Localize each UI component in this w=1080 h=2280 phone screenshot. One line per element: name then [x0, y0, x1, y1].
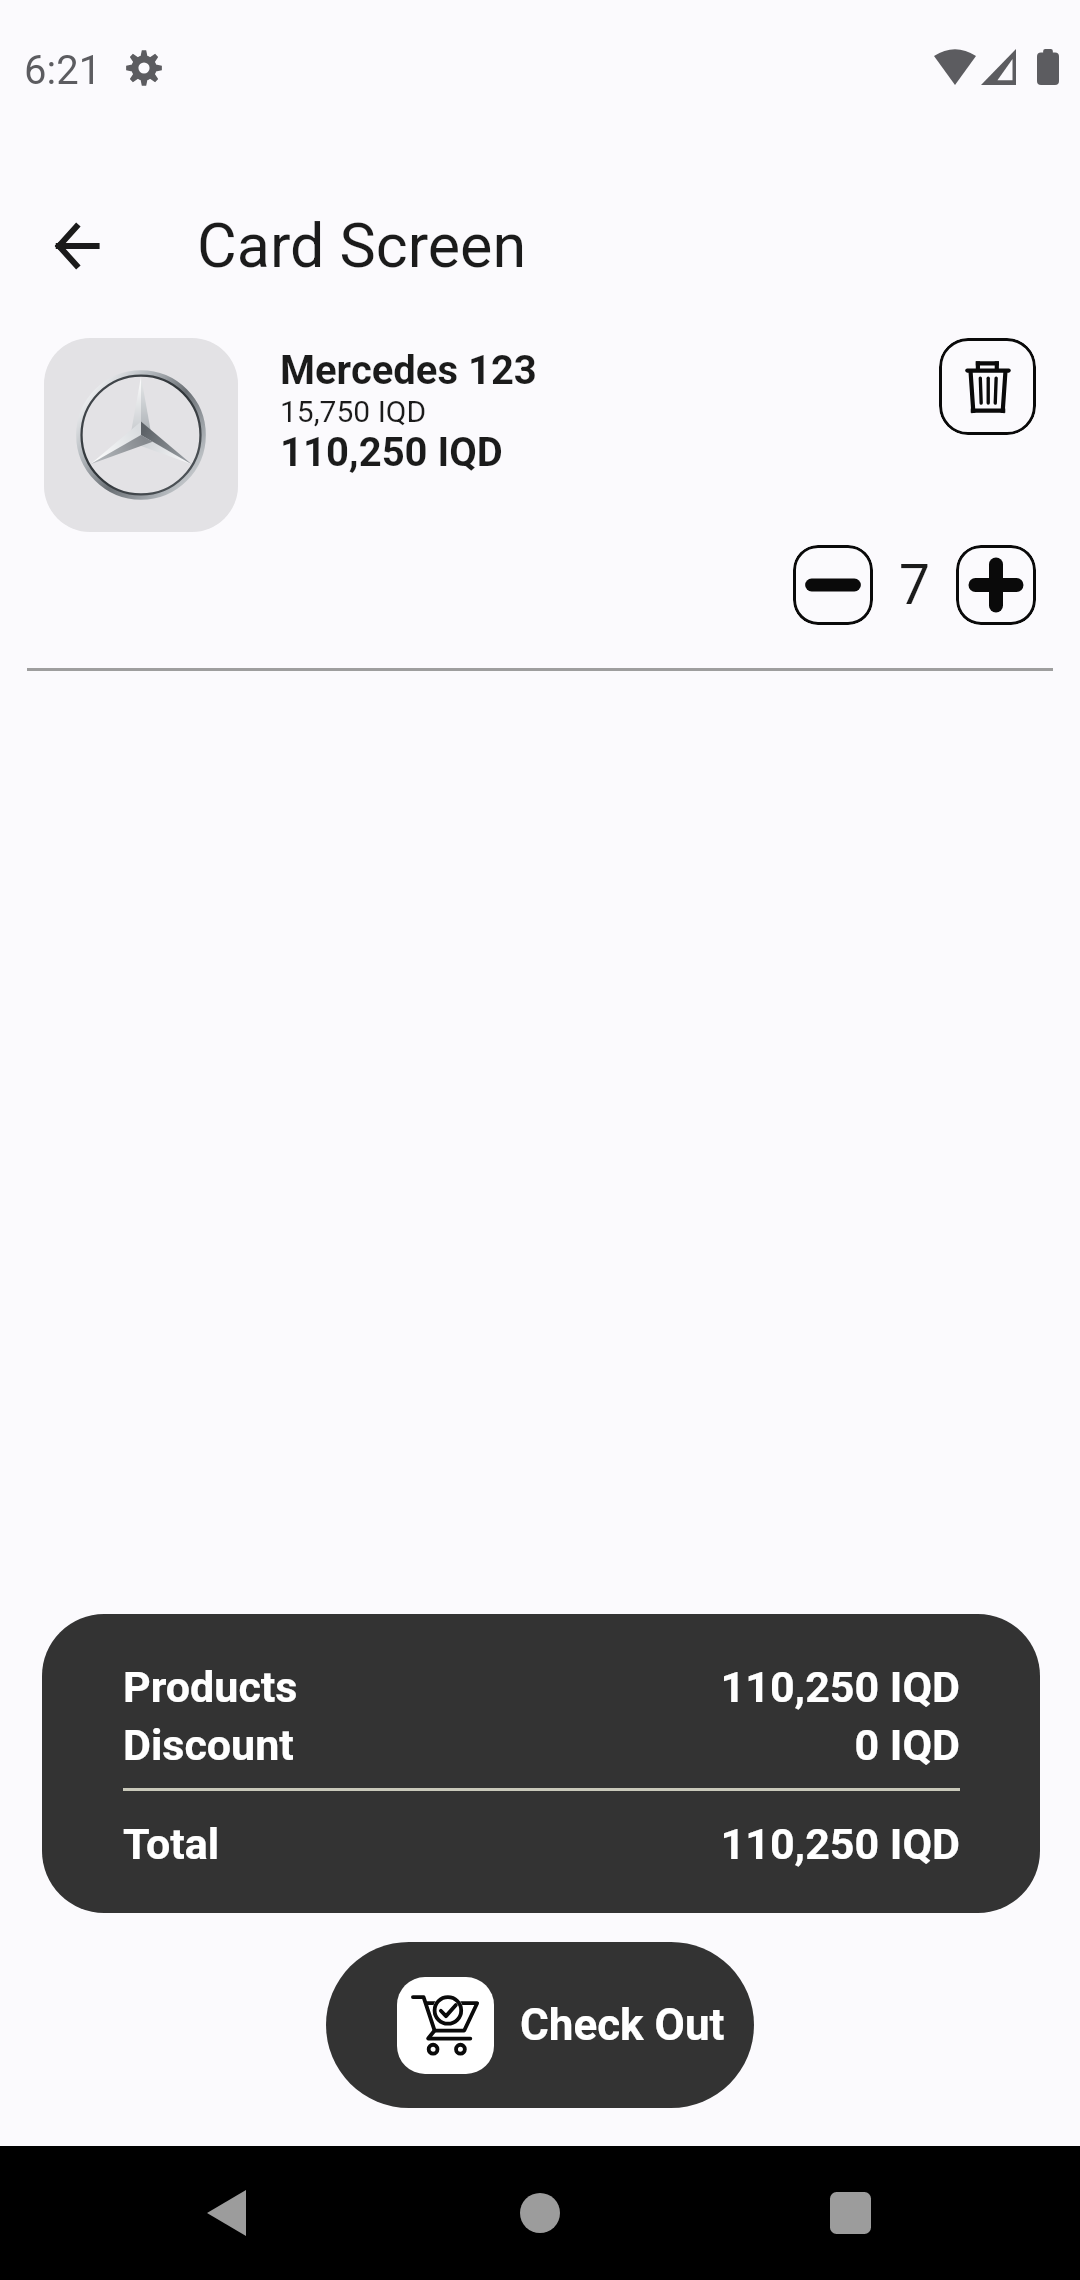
staticText: 7: [899, 553, 930, 617]
staticText: 110,250 IQD: [280, 429, 503, 476]
button[interactable]: Check Out: [326, 1942, 754, 2108]
staticText: Check Out: [520, 1999, 725, 2051]
button[interactable]: Recent apps: [795, 2158, 905, 2268]
staticText: Total: [123, 1819, 220, 1869]
staticText: Products: [123, 1662, 298, 1712]
button[interactable]: Back: [34, 201, 124, 291]
staticText: 0 IQD: [854, 1720, 960, 1770]
button[interactable]: Decrease quantity: [793, 545, 873, 625]
staticText: Mercedes 123: [280, 347, 537, 394]
button[interactable]: Delete item: [939, 338, 1036, 435]
staticText: 110,250 IQD: [720, 1662, 960, 1712]
button[interactable]: Back: [171, 2158, 281, 2268]
staticText: Card Screen: [197, 210, 527, 281]
button[interactable]: Increase quantity: [956, 545, 1036, 625]
staticText: Discount: [123, 1720, 294, 1770]
button[interactable]: Home: [485, 2158, 595, 2268]
staticText: 110,250 IQD: [720, 1819, 960, 1869]
staticText: 6:21: [24, 47, 102, 94]
staticText: 15,750 IQD: [280, 394, 427, 429]
